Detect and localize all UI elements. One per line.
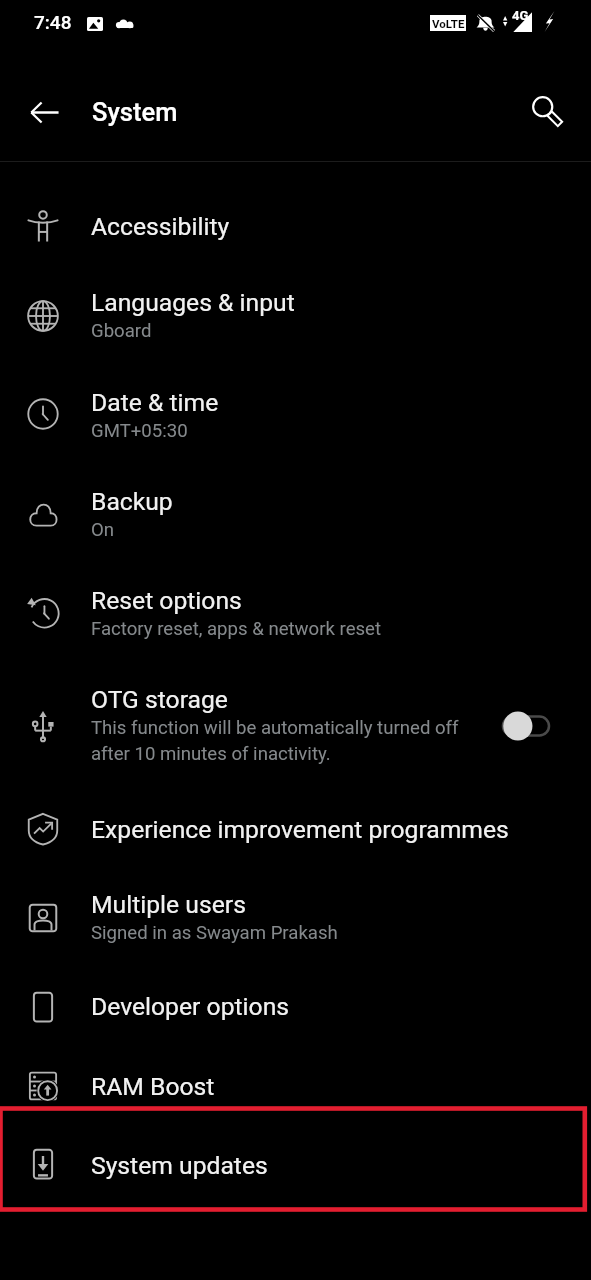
staticText: Date & time [91, 388, 219, 417]
button[interactable]: Reset options [0, 563, 591, 662]
staticText: This function will be automatically turn… [91, 717, 459, 739]
staticText: Languages & input [91, 288, 295, 317]
staticText: RAM Boost [91, 1072, 215, 1101]
button[interactable]: RAM Boost [0, 1047, 591, 1126]
staticText: GMT+05:30 [91, 420, 188, 442]
staticText: 4G [512, 8, 529, 23]
button[interactable]: Navigate up [15, 82, 73, 140]
button[interactable]: Search settings [517, 81, 575, 139]
button[interactable]: Languages & input [0, 265, 591, 365]
staticText: OTG storage [91, 685, 228, 714]
staticText: Backup [91, 487, 173, 516]
staticText: On [91, 519, 115, 541]
staticText: Experience improvement programmes [91, 815, 509, 844]
button[interactable]: Developer options [0, 968, 591, 1047]
button[interactable]: Accessibility [0, 162, 591, 265]
button[interactable]: Experience improvement programmes [0, 789, 591, 866]
button[interactable]: Backup [0, 464, 591, 563]
staticText: Gboard [91, 320, 152, 342]
staticText: Factory reset, apps & network reset [91, 618, 382, 640]
staticText: VoLTE [432, 17, 465, 30]
staticText: Signed in as Swayam Prakash [91, 922, 338, 944]
button[interactable]: OTG storage toggle [503, 709, 555, 743]
staticText: System [92, 97, 178, 127]
staticText: Multiple users [91, 890, 246, 919]
staticText: Developer options [91, 992, 290, 1021]
button[interactable]: OTG storage [0, 662, 591, 789]
staticText: System updates [91, 1151, 268, 1180]
button[interactable]: Date & time [0, 365, 591, 464]
button[interactable]: Multiple users [0, 866, 591, 968]
staticText: Reset options [91, 586, 242, 615]
button[interactable]: System updates [0, 1126, 591, 1210]
staticText: 7:48 [34, 11, 72, 33]
staticText: after 10 minutes of inactivity. [91, 743, 331, 765]
staticText: Accessibility [91, 212, 230, 241]
